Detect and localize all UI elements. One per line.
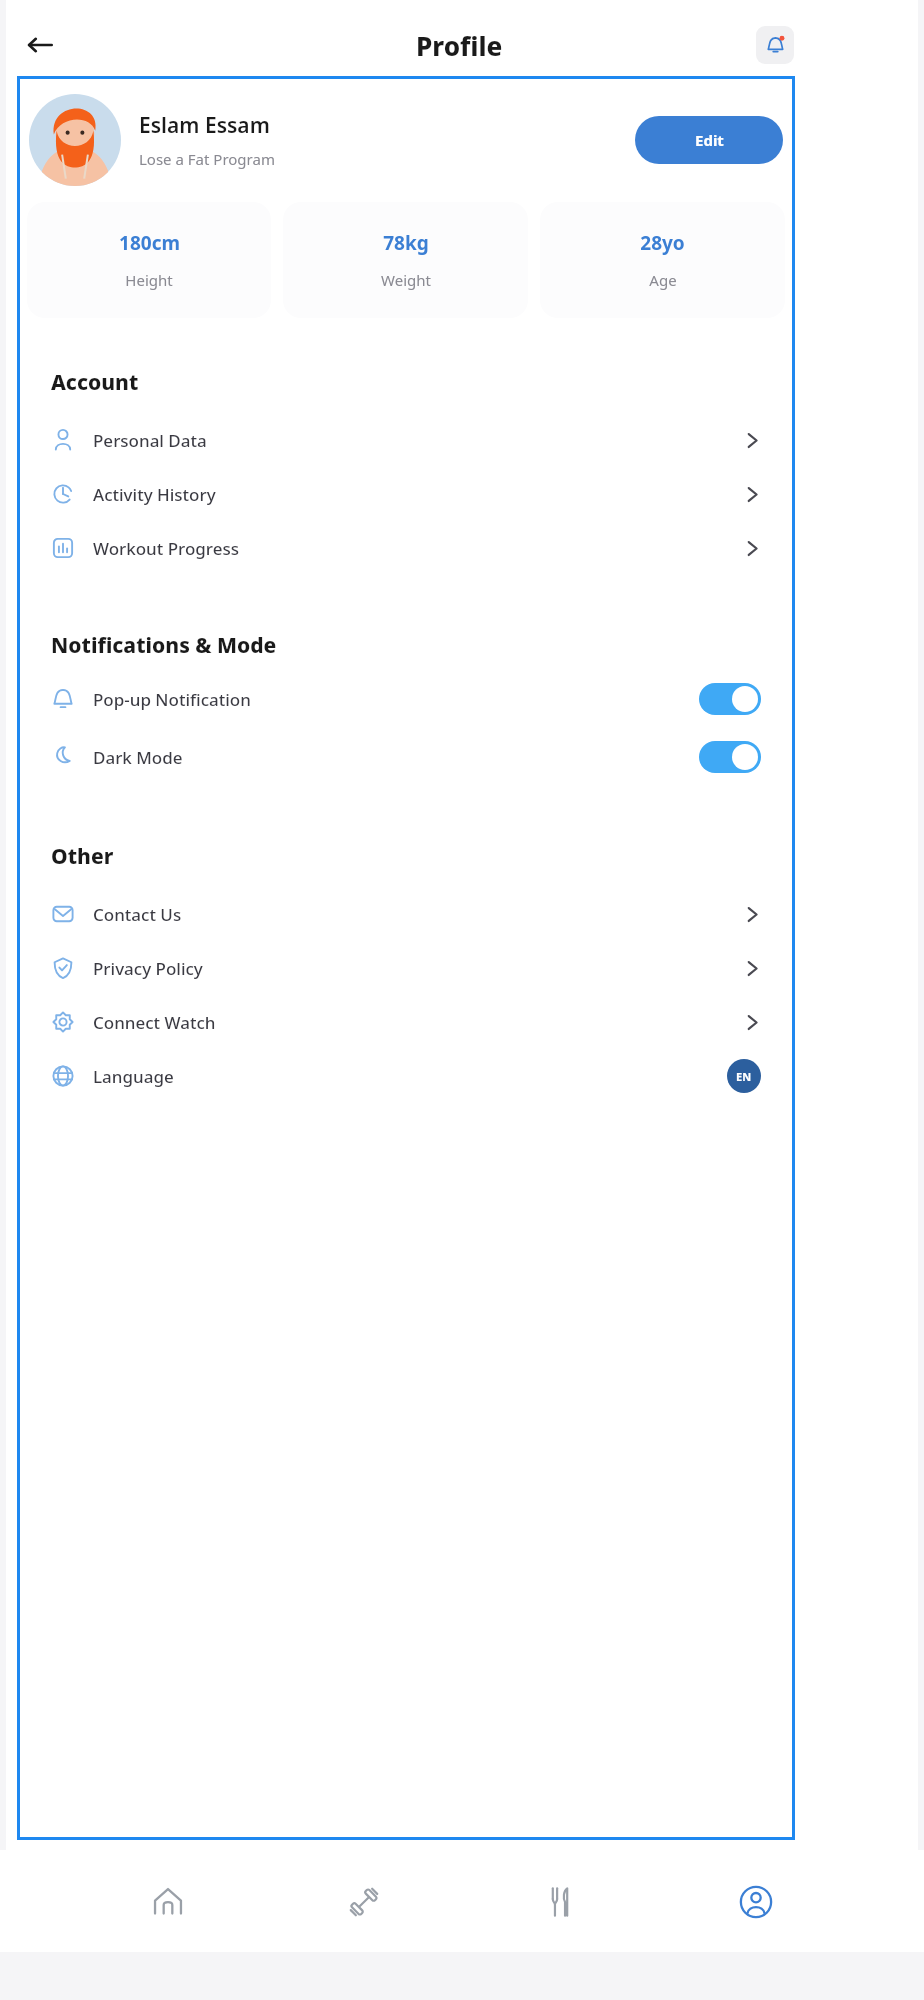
button[interactable]: Pop-up Notification — [51, 670, 761, 728]
button[interactable]: 28yo — [540, 202, 785, 318]
staticText: Profile — [416, 28, 503, 63]
staticText: Eslam Essam — [139, 111, 270, 140]
staticText: Workout Progress — [93, 537, 744, 560]
button[interactable]: Dark Mode — [51, 728, 761, 786]
button[interactable]: Back — [20, 25, 60, 65]
staticText: Contact Us — [93, 903, 744, 926]
button[interactable]: Nutrition — [522, 1864, 598, 1940]
staticText: Notifications & Mode — [51, 631, 277, 660]
staticText: Privacy Policy — [93, 957, 744, 980]
staticText: Dark Mode — [93, 746, 699, 769]
button[interactable]: 180cm — [27, 202, 271, 318]
staticText: Edit — [695, 130, 724, 150]
button[interactable]: Profile — [718, 1864, 794, 1940]
button[interactable]: Contact Us — [51, 887, 761, 941]
staticText: Weight — [381, 270, 431, 290]
button[interactable]: Notifications — [756, 26, 794, 64]
button[interactable]: Workout Progress — [51, 521, 761, 575]
staticText: 180cm — [119, 230, 180, 256]
button[interactable]: Personal Data — [51, 413, 761, 467]
staticText: Language — [93, 1065, 727, 1088]
button[interactable]: Home — [130, 1864, 206, 1940]
staticText: 28yo — [640, 230, 685, 256]
staticText: Pop-up Notification — [93, 688, 699, 711]
staticText: 78kg — [383, 230, 429, 256]
staticText: Personal Data — [93, 429, 744, 452]
staticText: Age — [649, 270, 677, 290]
staticText: Lose a Fat Program — [139, 149, 275, 169]
staticText: EN — [736, 1069, 752, 1084]
staticText: Activity History — [93, 483, 744, 506]
button[interactable]: 78kg — [283, 202, 528, 318]
button[interactable]: Activity History — [51, 467, 761, 521]
button[interactable]: Privacy Policy — [51, 941, 761, 995]
button[interactable]: Workout — [326, 1864, 402, 1940]
button[interactable]: Language — [51, 1049, 761, 1103]
staticText: Height — [125, 270, 173, 290]
button[interactable]: Connect Watch — [51, 995, 761, 1049]
staticText: Account — [51, 368, 139, 397]
button[interactable]: Edit — [635, 116, 783, 164]
staticText: Other — [51, 842, 114, 871]
staticText: Connect Watch — [93, 1011, 744, 1034]
